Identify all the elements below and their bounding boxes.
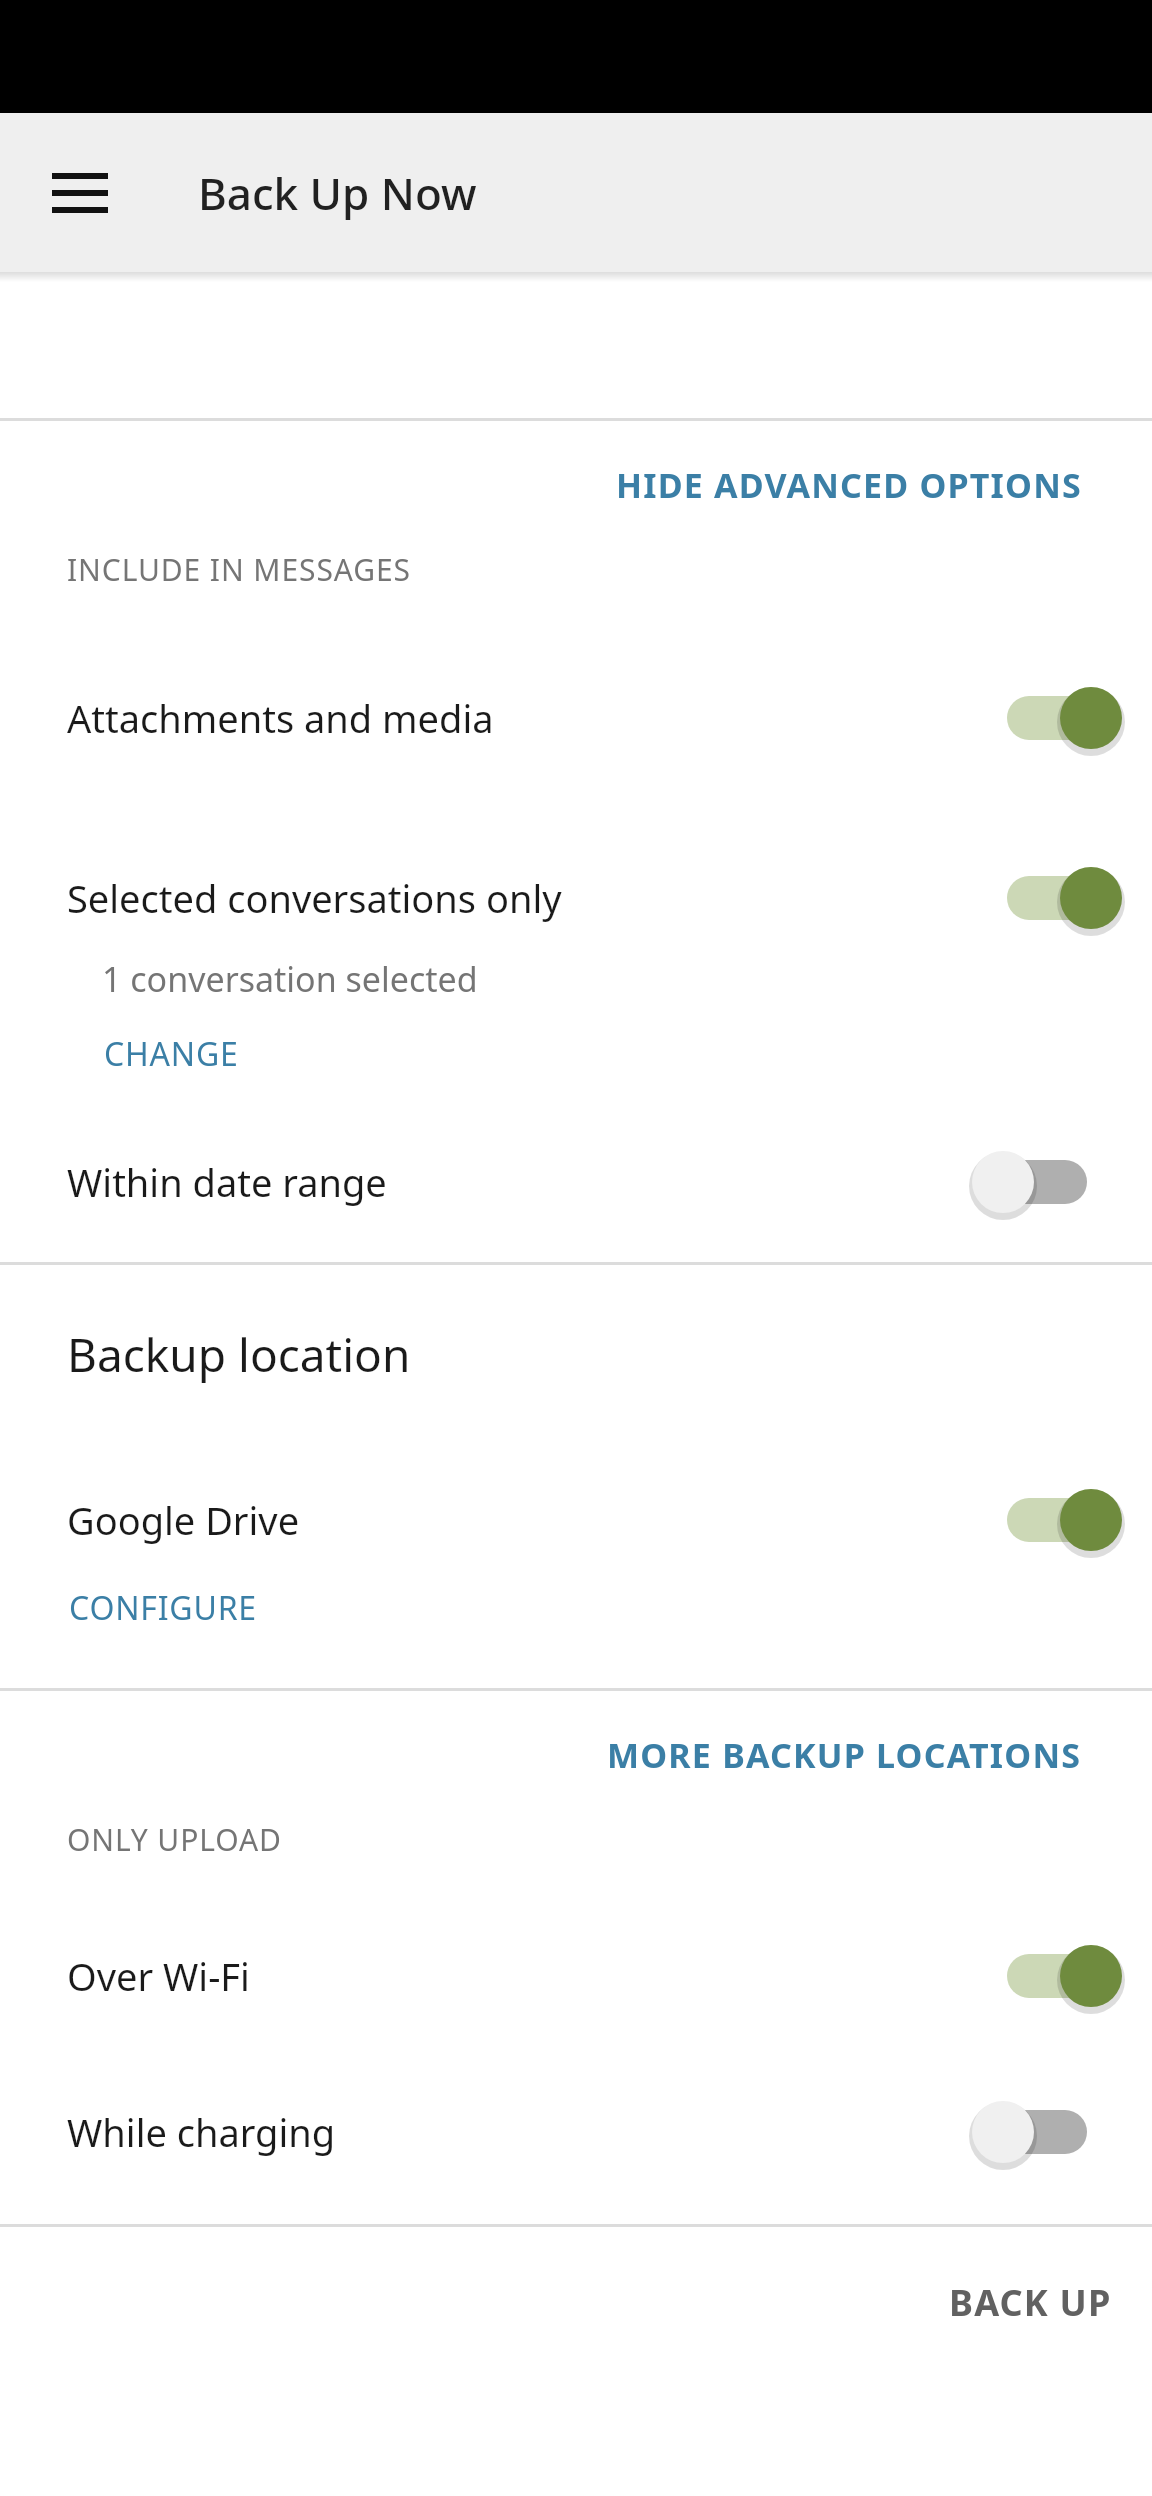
button[interactable]: CHANGE — [102, 1026, 241, 1082]
button[interactable]: BACK UP — [909, 2254, 1152, 2351]
button[interactable]: Google Drive — [972, 1472, 1122, 1568]
staticText: 1 conversation selected — [102, 956, 478, 1002]
button[interactable]: Attachments and media — [0, 670, 1152, 766]
button[interactable]: While charging — [0, 2084, 1152, 2180]
staticText: Attachments and media — [67, 692, 972, 744]
staticText: ONLY UPLOAD — [67, 1819, 282, 1860]
button[interactable]: Within date range — [0, 1134, 1152, 1230]
staticText: Back Up Now — [198, 163, 477, 223]
button[interactable]: HIDE ADVANCED OPTIONS — [0, 421, 1152, 549]
staticText: HIDE ADVANCED OPTIONS — [616, 462, 1082, 508]
button[interactable]: Attachments and media — [972, 670, 1122, 766]
staticText: CONFIGURE — [69, 1586, 257, 1630]
staticText: INCLUDE IN MESSAGES — [67, 549, 411, 590]
button[interactable]: Selected conversations only — [0, 850, 1152, 946]
button[interactable]: Google Drive — [0, 1472, 1152, 1568]
button[interactable]: Selected conversations only — [972, 850, 1122, 946]
staticText: CHANGE — [104, 1032, 239, 1076]
staticText: Within date range — [67, 1156, 972, 1208]
staticText: Over Wi-Fi — [67, 1950, 972, 2002]
button[interactable]: While charging — [972, 2084, 1122, 2180]
button[interactable]: Over Wi-Fi — [972, 1928, 1122, 2024]
staticText: MORE BACKUP LOCATIONS — [607, 1732, 1082, 1778]
staticText: Backup location — [67, 1323, 411, 1386]
button[interactable]: CONFIGURE — [67, 1580, 259, 1636]
staticText: Google Drive — [67, 1494, 972, 1546]
button[interactable]: MORE BACKUP LOCATIONS — [0, 1691, 1152, 1819]
staticText: Selected conversations only — [67, 872, 972, 924]
button[interactable]: Open navigation menu — [40, 153, 120, 233]
staticText: BACK UP — [949, 2278, 1112, 2327]
button[interactable]: Over Wi-Fi — [0, 1928, 1152, 2024]
button[interactable]: Within date range — [972, 1134, 1122, 1230]
staticText: While charging — [67, 2106, 972, 2158]
